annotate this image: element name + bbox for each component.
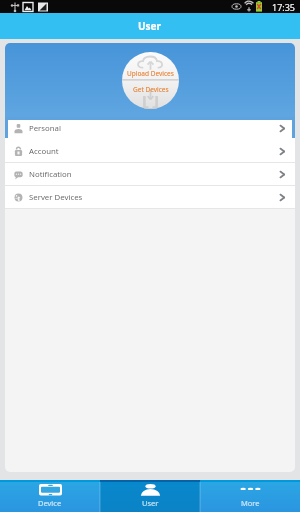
staticText: Personal [29, 123, 61, 134]
staticText: Notification [29, 169, 72, 180]
staticText: User [142, 498, 159, 508]
staticText: Server Devices [29, 192, 83, 203]
staticText: 17:35 [272, 1, 296, 13]
button[interactable]: User [100, 480, 200, 512]
button[interactable]: Account [5, 140, 295, 163]
staticText: Get Devices [133, 85, 169, 94]
staticText: Device [38, 498, 62, 508]
button[interactable]: Upload Devices [122, 52, 179, 109]
button[interactable]: Server Devices [5, 186, 295, 209]
button[interactable]: More [200, 480, 300, 512]
button[interactable]: Personal [5, 117, 295, 140]
button[interactable]: Device [0, 480, 100, 512]
button[interactable]: Notification [5, 163, 295, 186]
staticText: Account [29, 146, 59, 157]
staticText: More [241, 498, 260, 508]
staticText: User [138, 19, 162, 33]
staticText: Upload Devices [127, 69, 174, 78]
